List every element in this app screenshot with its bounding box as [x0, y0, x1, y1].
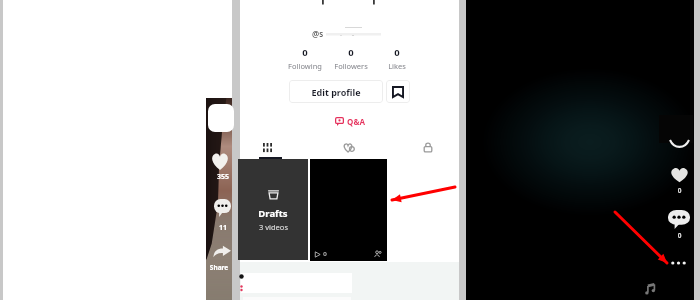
staticText: Drafts	[258, 207, 288, 220]
button[interactable]: 0	[310, 159, 387, 261]
staticText: 0	[348, 46, 354, 59]
button[interactable]: 0	[282, 46, 328, 71]
staticText: Share	[207, 263, 231, 272]
button[interactable]: Like	[210, 151, 230, 172]
staticText: 0	[673, 231, 686, 240]
button[interactable]: More options	[669, 259, 688, 267]
button[interactable]: 0	[374, 46, 420, 71]
button[interactable]: Posts	[262, 142, 273, 153]
staticText: Likes	[388, 61, 406, 71]
staticText: @s	[312, 28, 326, 38]
button[interactable]: Q&A	[335, 116, 365, 127]
staticText: 0	[394, 46, 400, 59]
staticText: 3 videos	[259, 222, 288, 232]
button[interactable]: Comment	[214, 199, 231, 217]
button[interactable]: Private	[422, 141, 434, 154]
staticText: 355	[214, 172, 232, 182]
staticText: 0	[673, 186, 686, 195]
staticText: Edit profile	[311, 86, 361, 98]
staticText: 0	[323, 250, 327, 258]
button[interactable]: Drafts	[238, 159, 308, 260]
staticText: 0	[302, 46, 308, 59]
button[interactable]: Like	[669, 166, 690, 184]
staticText: Followers	[334, 61, 368, 71]
staticText: Following	[288, 61, 322, 71]
staticText: 11	[214, 223, 232, 233]
button[interactable]: Edit profile	[289, 80, 383, 103]
button[interactable]: Bookmark	[386, 80, 410, 103]
button[interactable]: 0	[328, 46, 374, 71]
button[interactable]: Liked	[342, 141, 355, 154]
button[interactable]: Profile	[208, 104, 234, 132]
staticText: Q&A	[347, 116, 365, 127]
button[interactable]: Profile	[659, 115, 693, 143]
button[interactable]: Comment	[668, 210, 690, 229]
button[interactable]: Share	[213, 244, 231, 259]
